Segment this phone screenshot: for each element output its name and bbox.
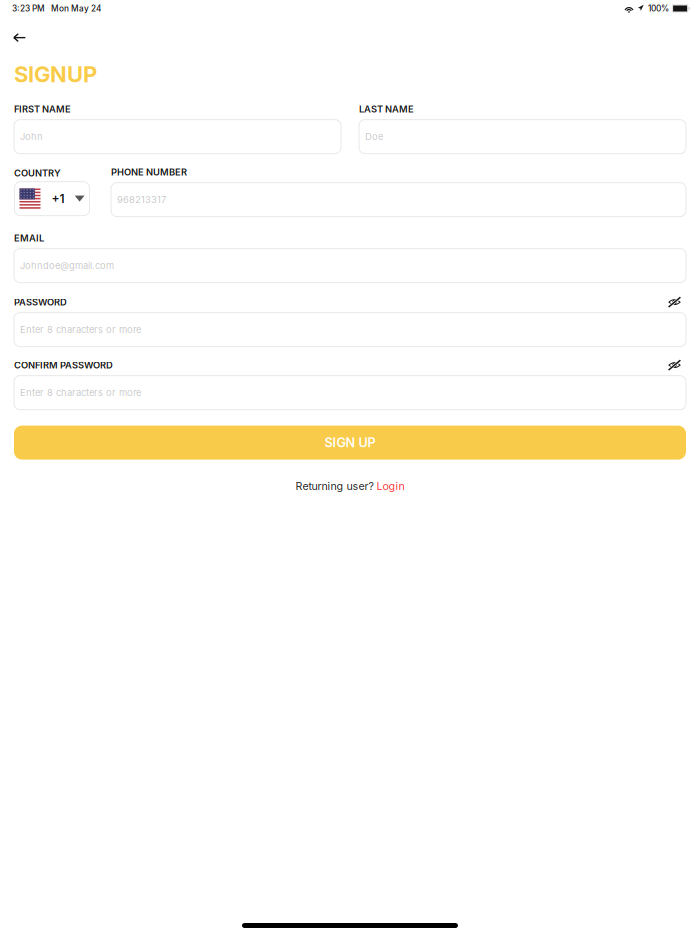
button[interactable]: PHONE NUMBER — [111, 183, 686, 217]
staticText: FIRST NAME — [14, 103, 71, 115]
staticText: LAST NAME — [359, 103, 414, 115]
staticText: Returning user? — [295, 480, 376, 492]
staticText: Mon May 24 — [51, 3, 101, 13]
staticText: SIGN UP — [324, 435, 375, 450]
staticText: Doe — [365, 131, 383, 142]
staticText: SIGNUP — [14, 61, 97, 88]
button[interactable]: Back — [0, 26, 40, 49]
staticText: Login — [376, 480, 404, 492]
staticText: PASSWORD — [14, 296, 67, 308]
button[interactable]: +1 — [14, 182, 89, 216]
staticText: EMAIL — [14, 232, 44, 244]
button[interactable]: LAST NAME — [359, 120, 686, 154]
button[interactable]: CONFIRM PASSWORD — [14, 376, 686, 410]
staticText: 100% — [648, 3, 669, 13]
staticText: 968213317 — [117, 194, 166, 205]
button[interactable]: Returning user? — [295, 474, 404, 498]
button[interactable]: SIGN UP — [14, 426, 686, 460]
staticText: PHONE NUMBER — [111, 166, 187, 178]
button[interactable]: Show confirm password — [660, 360, 686, 371]
staticText: John — [20, 131, 43, 142]
staticText: +1 — [51, 191, 64, 206]
staticText: Enter 8 characters or more — [20, 324, 141, 335]
staticText: COUNTRY — [14, 167, 61, 179]
button[interactable]: EMAIL — [14, 249, 686, 283]
staticText: Enter 8 characters or more — [20, 387, 141, 398]
staticText: Johndoe@gmail.com — [20, 260, 114, 271]
staticText: CONFIRM PASSWORD — [14, 359, 113, 371]
button[interactable]: FIRST NAME — [14, 120, 341, 154]
staticText: 3:23 PM — [12, 3, 45, 13]
button[interactable]: Show password — [660, 297, 686, 308]
button[interactable]: PASSWORD — [14, 313, 686, 347]
